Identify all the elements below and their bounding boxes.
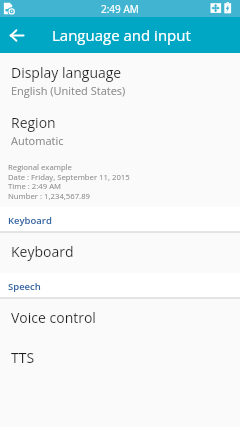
staticText: Speech [8,280,41,293]
staticText: Automatic [11,133,64,148]
staticText: TTS [11,348,35,367]
button[interactable]: Keyboard [0,233,240,273]
staticText: Region [11,113,56,132]
staticText: Language and input [52,25,191,45]
staticText: Display language [11,63,122,82]
staticText: Voice control [11,308,96,327]
button[interactable]: Back [0,17,34,53]
staticText: 2:49 AM [101,2,139,16]
staticText: Time : 2:49 AM [8,181,62,192]
button[interactable]: Region [0,103,240,147]
staticText: Number : 1,234,567.89 [8,191,91,202]
staticText: Date : Friday, September 11, 2015 [8,172,130,183]
staticText: Keyboard [11,242,74,261]
staticText: Keyboard [8,214,52,227]
button[interactable]: TTS [0,339,240,379]
button[interactable]: Display language [0,53,240,103]
staticText: Regional example [8,162,72,173]
button[interactable]: Voice control [0,299,240,339]
staticText: English (United States) [11,83,126,98]
